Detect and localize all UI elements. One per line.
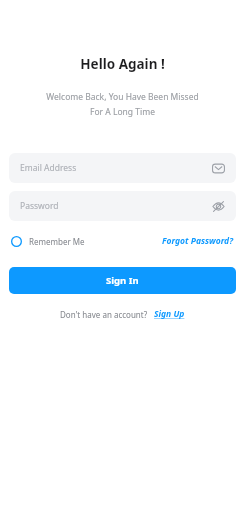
other: Email: [212, 162, 225, 175]
staticText: Don't have an account?: [60, 309, 148, 320]
button[interactable]: Email Address: [9, 153, 236, 183]
staticText: Sign Up: [154, 308, 185, 320]
staticText: Password: [20, 200, 212, 212]
staticText: Welcome Back, You Have Been Missed For A…: [46, 91, 199, 117]
staticText: Hello Again !: [80, 55, 165, 73]
button[interactable]: Sign Up: [154, 308, 185, 320]
staticText: Forgot Password?: [162, 235, 234, 247]
button[interactable]: Show password: [212, 200, 225, 213]
button[interactable]: Remember Me: [11, 234, 85, 249]
staticText: Remember Me: [29, 236, 85, 247]
button[interactable]: Password: [9, 191, 236, 221]
staticText: Sign In: [106, 274, 139, 287]
button[interactable]: Forgot Password?: [162, 233, 234, 249]
button[interactable]: Sign In: [9, 267, 236, 294]
staticText: Email Address: [20, 162, 212, 174]
